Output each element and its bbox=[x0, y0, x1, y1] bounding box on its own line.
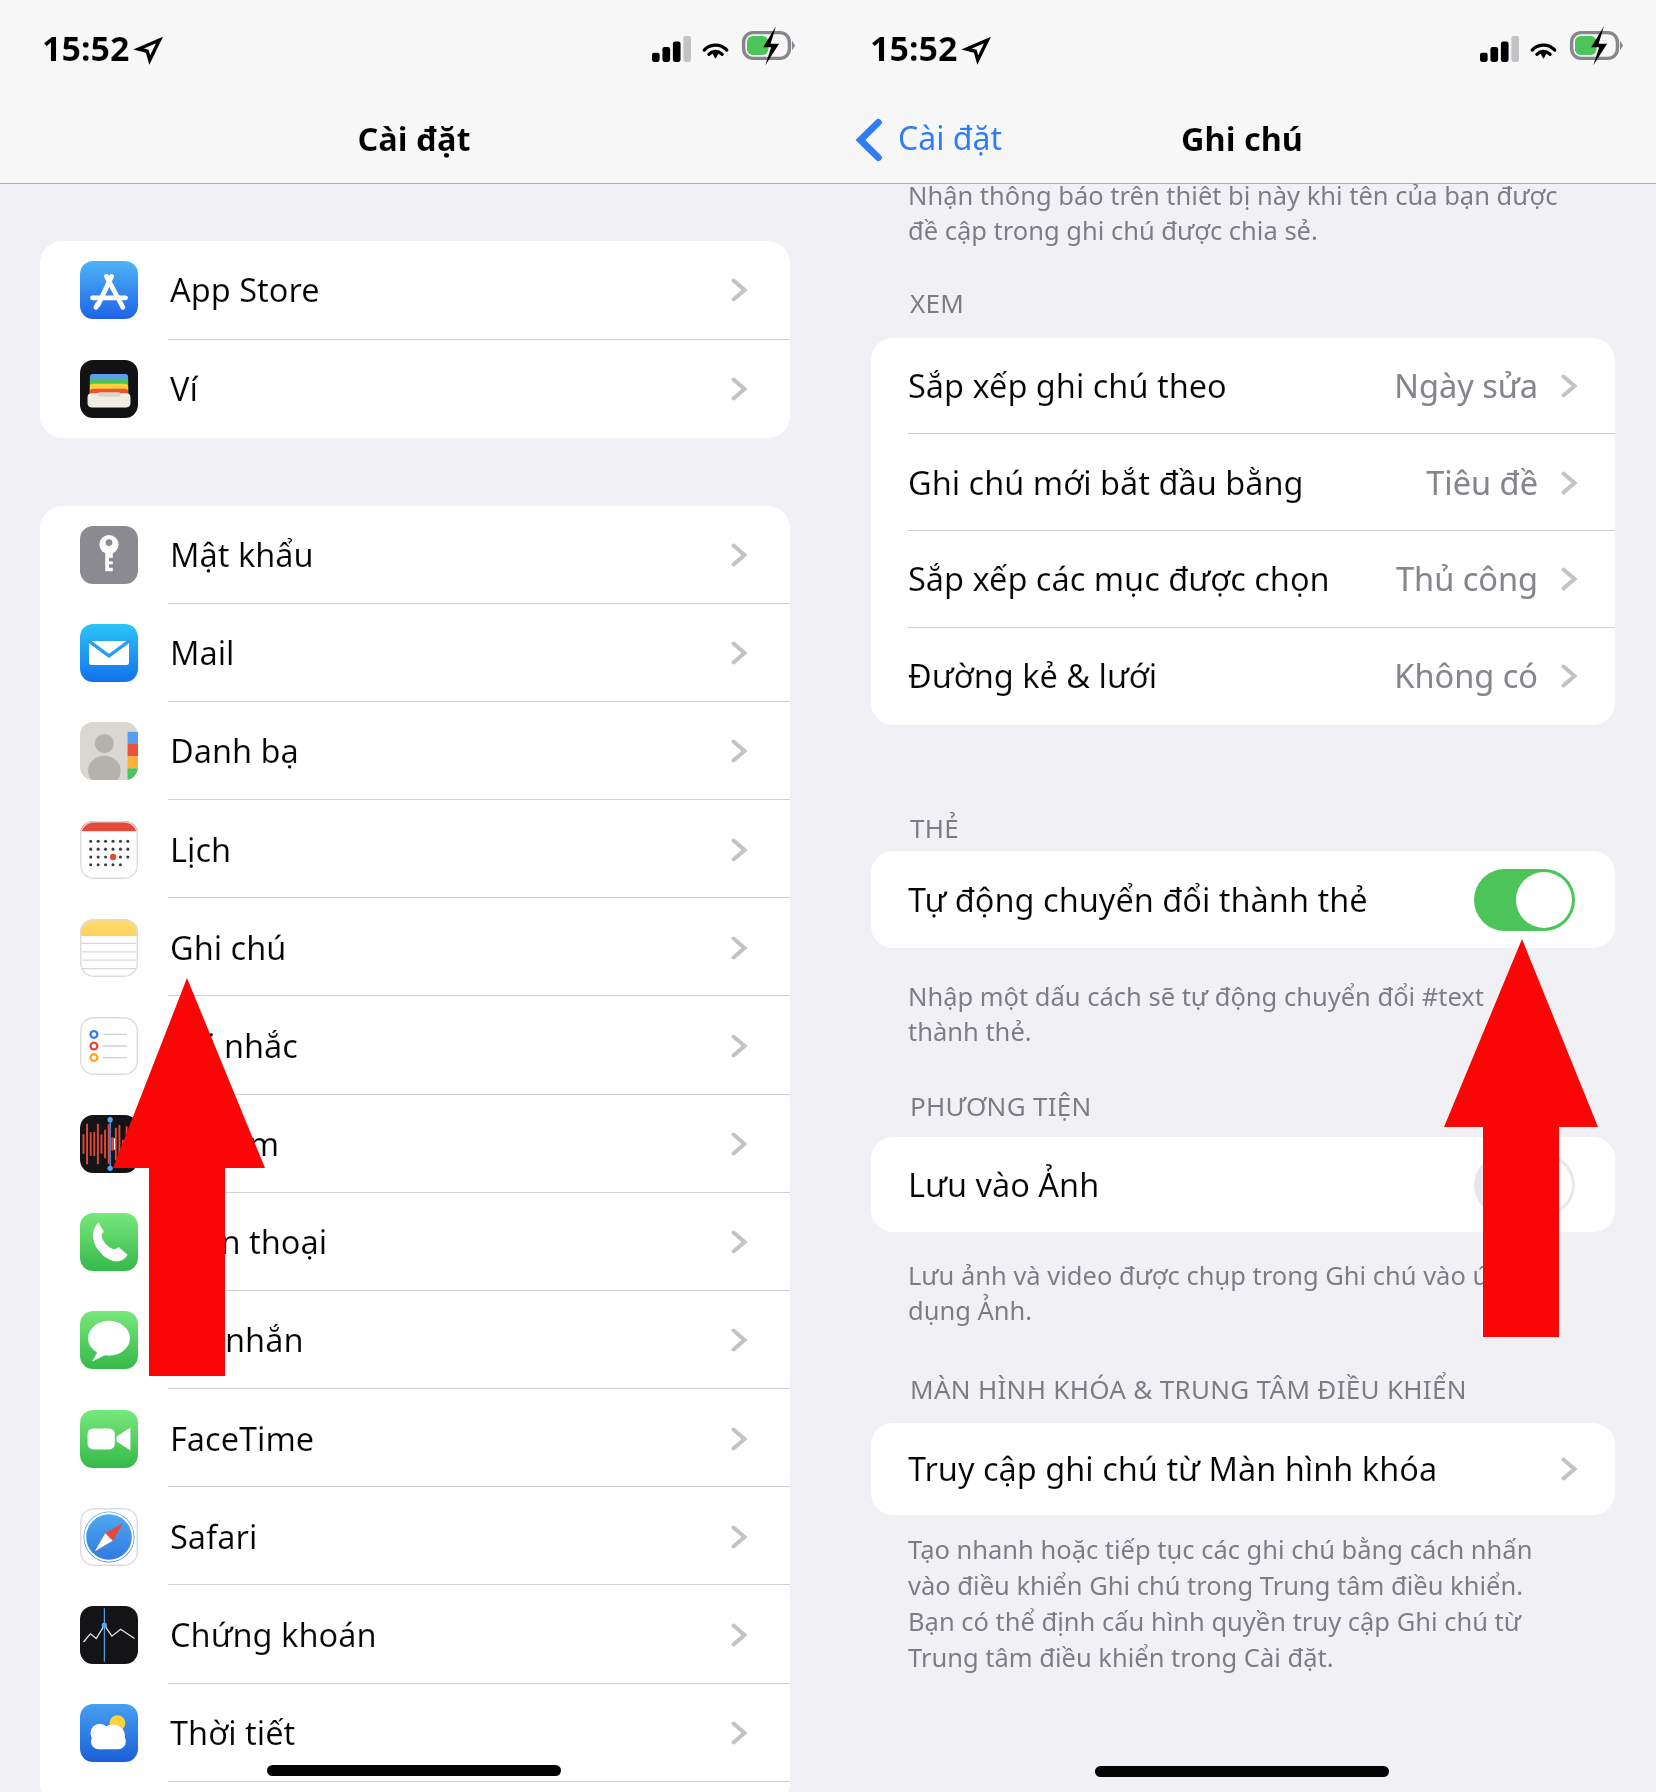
button[interactable]: Mật khẩu bbox=[40, 506, 790, 604]
staticText: Ghi chú bbox=[170, 925, 287, 969]
staticText: Chứng khoán bbox=[170, 1612, 377, 1656]
button[interactable]: Lời nhắc bbox=[40, 997, 790, 1095]
staticText: Safari bbox=[170, 1514, 258, 1558]
button[interactable]: Sắp xếp các mục được chọn bbox=[871, 531, 1615, 628]
staticText: Sắp xếp ghi chú theo bbox=[908, 363, 1227, 407]
staticText: Ghi chú mới bắt đầu bằng bbox=[908, 460, 1304, 504]
staticText: MÀN HÌNH KHÓA & TRUNG TÂM ĐIỀU KHIỂN bbox=[910, 1371, 1467, 1406]
button[interactable]: App Store bbox=[40, 241, 790, 339]
button[interactable]: Truy cập ghi chú từ Màn hình khóa bbox=[871, 1423, 1615, 1515]
button[interactable]: Thời tiết bbox=[40, 1684, 790, 1782]
staticText: Không có bbox=[871, 653, 1538, 697]
staticText: Thời tiết bbox=[170, 1710, 296, 1754]
button[interactable]: Lịch bbox=[40, 801, 790, 899]
button[interactable]: Tin nhắn bbox=[40, 1291, 790, 1389]
button[interactable]: Tự động chuyển đổi thành thẻ bbox=[871, 851, 1615, 948]
button[interactable]: Danh bạ bbox=[40, 702, 790, 800]
staticText: App Store bbox=[170, 267, 320, 311]
button[interactable]: Ghi chú bbox=[40, 899, 790, 997]
staticText: 15:52 bbox=[870, 25, 958, 71]
staticText: Lời nhắc bbox=[170, 1023, 298, 1067]
staticText: Lưu vào Ảnh bbox=[908, 1162, 1100, 1206]
staticText: Cài đặt bbox=[0, 116, 828, 160]
staticText: Ghi âm bbox=[170, 1121, 280, 1165]
staticText: Điện thoại bbox=[170, 1219, 328, 1263]
staticText: FaceTime bbox=[170, 1416, 315, 1460]
staticText: Tự động chuyển đổi thành thẻ bbox=[908, 877, 1368, 921]
staticText: PHƯƠNG TIỆN bbox=[910, 1088, 1092, 1123]
staticText: Ngày sửa bbox=[871, 363, 1538, 407]
button[interactable]: FaceTime bbox=[40, 1390, 790, 1488]
staticText: Thủ công bbox=[871, 556, 1538, 600]
button[interactable]: Lưu vào Ảnh bbox=[871, 1137, 1615, 1232]
button[interactable]: Safari bbox=[40, 1488, 790, 1586]
staticText: Nhập một dấu cách sẽ tự động chuyển đổi … bbox=[908, 979, 1548, 1049]
staticText: Lịch bbox=[170, 827, 232, 871]
staticText: Cài đặt bbox=[898, 116, 1003, 160]
button[interactable]: Back to Cài đặt bbox=[848, 105, 1078, 173]
staticText: Mail bbox=[170, 630, 235, 674]
button[interactable]: Điện thoại bbox=[40, 1193, 790, 1291]
staticText: Nhận thông báo trên thiêt bị này khi tên… bbox=[908, 178, 1580, 248]
button[interactable]: Đường kẻ & lưới bbox=[871, 628, 1615, 725]
staticText: THẺ bbox=[910, 810, 960, 845]
button[interactable]: Ghi âm bbox=[40, 1095, 790, 1193]
staticText: Danh bạ bbox=[170, 728, 299, 772]
staticText: Ghi chú bbox=[828, 116, 1656, 160]
staticText: Tin nhắn bbox=[170, 1317, 304, 1361]
button[interactable]: Mail bbox=[40, 604, 790, 702]
staticText: XEM bbox=[910, 285, 965, 320]
staticText: Tiêu đề bbox=[871, 460, 1538, 504]
staticText: Truy cập ghi chú từ Màn hình khóa bbox=[908, 1446, 1438, 1490]
staticText: Lưu ảnh và video được chụp trong Ghi chú… bbox=[908, 1258, 1576, 1328]
staticText: Đường kẻ & lưới bbox=[908, 653, 1158, 697]
staticText: Tạo nhanh hoặc tiếp tục các ghi chú bằng… bbox=[908, 1532, 1576, 1674]
staticText: 15:52 bbox=[42, 25, 130, 71]
staticText: Sắp xếp các mục được chọn bbox=[908, 556, 1330, 600]
button[interactable]: Chứng khoán bbox=[40, 1586, 790, 1684]
button[interactable]: Ghi chú mới bắt đầu bằng bbox=[871, 435, 1615, 532]
staticText: Mật khẩu bbox=[170, 532, 314, 576]
button[interactable]: Ví bbox=[40, 339, 790, 438]
button[interactable]: Sắp xếp ghi chú theo bbox=[871, 338, 1615, 435]
staticText: Ví bbox=[170, 366, 198, 410]
